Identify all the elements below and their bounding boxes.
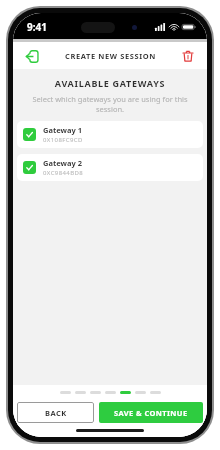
button[interactable]: Exit session (21, 45, 43, 67)
staticText: AVAILABLE GATEWAYS (13, 77, 207, 89)
button[interactable]: SAVE & CONTINUE (99, 402, 203, 423)
staticText: 0XC9844BD8 (43, 169, 84, 177)
button[interactable]: Gateway 2 (17, 154, 203, 181)
staticText: 0X108FC9CD (43, 136, 83, 144)
staticText: Select which gateways you are using for … (19, 94, 201, 114)
button[interactable]: BACK (17, 402, 94, 423)
staticText: BACK (45, 408, 67, 418)
staticText: 9:41 (27, 20, 47, 34)
staticText: CREATE NEW SESSION (65, 51, 156, 61)
staticText: Gateway 2 (43, 158, 82, 168)
staticText: Gateway 1 (43, 125, 82, 135)
staticText: SAVE & CONTINUE (114, 408, 188, 418)
button[interactable]: Delete session (177, 45, 199, 67)
button[interactable]: Gateway 1 (17, 121, 203, 148)
